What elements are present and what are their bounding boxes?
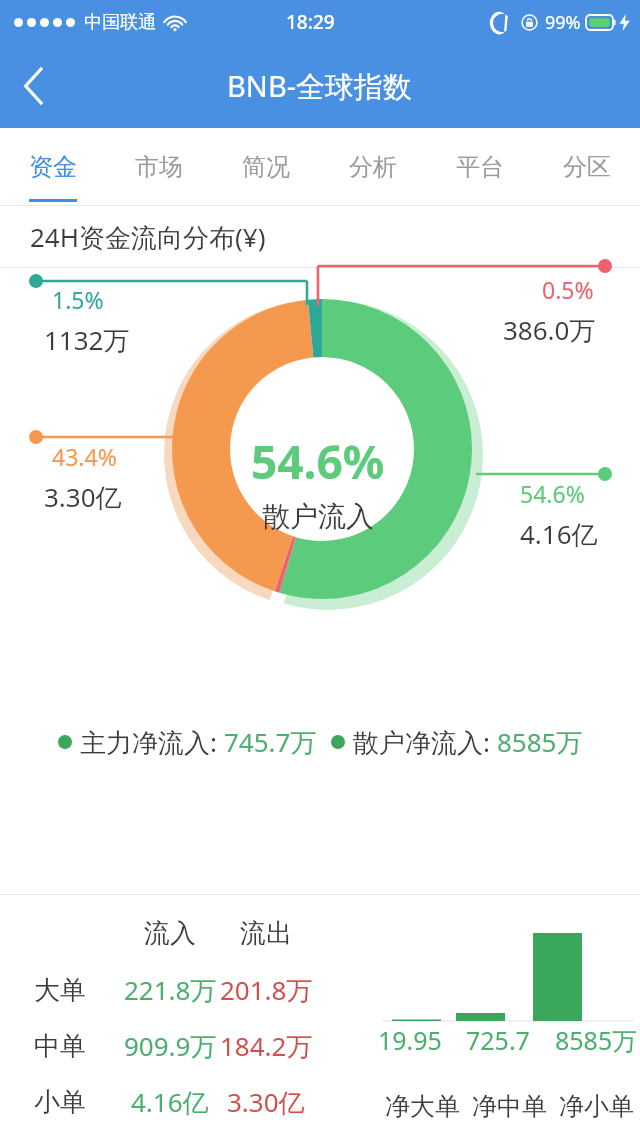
staticText: 市场	[135, 152, 183, 182]
staticText: 4.16亿	[520, 516, 598, 552]
staticText: 43.4%	[52, 441, 117, 472]
staticText: 散户流入	[262, 499, 374, 534]
button[interactable]: 简况	[212, 128, 319, 206]
staticText: 净小单	[559, 1091, 634, 1122]
staticText: 24H资金流向分布(¥)	[30, 219, 266, 255]
staticText: 3.30亿	[44, 479, 122, 515]
staticText: 909.9万	[124, 1028, 217, 1064]
staticText: 中单	[34, 1030, 86, 1063]
staticText: 54.6%	[251, 430, 385, 493]
staticText: 分析	[349, 152, 397, 182]
staticText: 18:29	[286, 9, 335, 35]
staticText: BNB-全球指数	[227, 66, 413, 106]
button[interactable]: Back	[6, 58, 62, 114]
staticText: 散户净流入:	[353, 724, 497, 760]
staticText: 201.8万	[220, 972, 313, 1008]
staticText: 0.5%	[542, 274, 594, 305]
staticText: 221.8万	[124, 972, 217, 1008]
staticText: 1.5%	[52, 284, 104, 315]
staticText: 4.16亿	[131, 1084, 209, 1120]
staticText: 资金	[29, 152, 77, 182]
button[interactable]: 分区	[533, 128, 640, 206]
staticText: 净大单	[385, 1091, 460, 1122]
staticText: 19.95万	[378, 1023, 466, 1057]
button[interactable]: 市场	[106, 128, 212, 206]
staticText: 8585万	[497, 724, 583, 760]
staticText: 54.6%	[520, 478, 585, 509]
button[interactable]: 分析	[319, 128, 426, 206]
staticText: 745.7万	[224, 724, 317, 760]
staticText: 主力净流入:	[80, 724, 224, 760]
staticText: 1132万	[44, 322, 130, 358]
staticText: 8585万	[555, 1023, 638, 1057]
staticText: 386.0万	[503, 312, 596, 348]
button[interactable]: 平台	[426, 128, 533, 206]
staticText: 大单	[34, 974, 86, 1007]
staticText: 184.2万	[220, 1028, 313, 1064]
staticText: 小单	[34, 1086, 86, 1119]
staticText: 分区	[563, 152, 611, 182]
staticText: 99%	[545, 10, 581, 35]
staticText: 3.30亿	[227, 1084, 305, 1120]
button[interactable]: 资金	[0, 128, 106, 206]
staticText: 流出	[240, 917, 292, 950]
staticText: 流入	[144, 917, 196, 950]
staticText: 725.7万	[466, 1023, 553, 1057]
staticText: 中国联通	[84, 11, 156, 34]
staticText: 简况	[242, 152, 290, 182]
staticText: 净中单	[472, 1091, 547, 1122]
staticText: 平台	[456, 152, 504, 182]
